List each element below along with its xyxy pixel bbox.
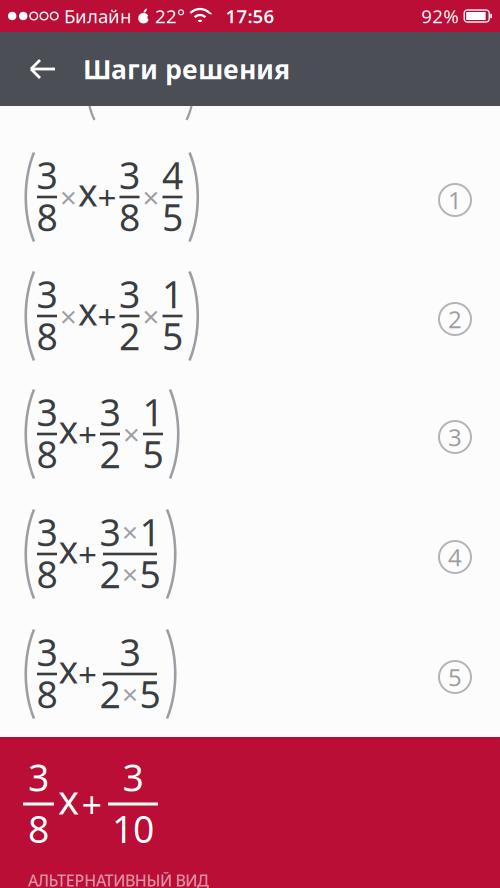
staticText: 2 [99, 429, 120, 479]
staticText: 5 [162, 311, 183, 361]
button[interactable]: 3 [0, 141, 500, 259]
staticText: 1 [139, 507, 160, 556]
staticText: Билайн [64, 4, 131, 28]
staticText: × [122, 675, 138, 712]
staticText: × [122, 555, 138, 592]
staticText: АЛЬТЕРНАТИВНЫЙ ВИД [28, 870, 209, 888]
staticText: × [122, 513, 138, 550]
staticText: 2 [119, 311, 140, 361]
staticText: 3 [448, 421, 462, 453]
staticText: + [97, 294, 116, 338]
staticText: 5 [142, 429, 163, 479]
staticText: 3 [28, 752, 49, 802]
staticText: 3 [122, 752, 143, 802]
staticText: 8 [36, 549, 57, 599]
staticText: 3 [99, 507, 120, 556]
staticText: 4 [448, 541, 462, 573]
staticText: 3 [119, 150, 140, 199]
staticText: + [97, 175, 116, 219]
staticText: × [60, 177, 77, 216]
staticText: 5 [139, 549, 160, 599]
staticText: x [78, 286, 98, 336]
staticText: 8 [28, 804, 49, 853]
staticText: × [142, 296, 159, 335]
staticText: 10 [112, 804, 154, 853]
staticText: 8 [119, 192, 140, 242]
staticText: 3 [99, 387, 120, 436]
staticText: × [123, 414, 140, 453]
staticText: 8 [36, 192, 57, 242]
button[interactable]: 3 [0, 498, 500, 616]
staticText: 2 [99, 669, 120, 719]
staticText: × [60, 296, 77, 335]
staticText: 2 [99, 549, 120, 599]
staticText: 3 [36, 269, 57, 318]
staticText: 1 [142, 387, 163, 436]
button[interactable]: 3 [0, 618, 500, 736]
staticText: 3 [119, 269, 140, 318]
staticText: 92% [421, 4, 459, 28]
staticText: + [78, 532, 97, 576]
staticText: 5 [162, 192, 183, 242]
button[interactable]: 3 [0, 260, 500, 378]
staticText: 4 [162, 150, 183, 199]
staticText: × [142, 177, 159, 216]
staticText: 3 [36, 387, 57, 436]
staticText: 3 [36, 627, 57, 676]
staticText: 3 [36, 150, 57, 199]
staticText: x [58, 404, 78, 454]
staticText: 8 [36, 429, 57, 479]
button[interactable]: Back [0, 32, 83, 106]
staticText: x [58, 644, 78, 694]
staticText: x [78, 167, 98, 217]
staticText: x [58, 772, 79, 825]
staticText: 3 [36, 507, 57, 556]
staticText: 22° [155, 4, 185, 28]
staticText: 5 [448, 661, 462, 693]
staticText: 1 [162, 269, 183, 318]
staticText: 2 [448, 303, 462, 335]
button[interactable]: 3 [0, 378, 500, 496]
staticText: + [78, 412, 97, 456]
button[interactable]: АЛЬТЕРНАТИВНЫЙ ВИД [0, 867, 209, 888]
staticText: 1 [448, 184, 462, 216]
staticText: + [81, 780, 102, 828]
staticText: 8 [36, 311, 57, 361]
staticText: 17:56 [225, 4, 274, 28]
staticText: 5 [139, 669, 160, 719]
staticText: Шаги решения [83, 51, 290, 87]
staticText: + [78, 652, 97, 696]
staticText: 8 [36, 669, 57, 719]
staticText: 3 [119, 627, 140, 676]
staticText: x [58, 524, 78, 574]
